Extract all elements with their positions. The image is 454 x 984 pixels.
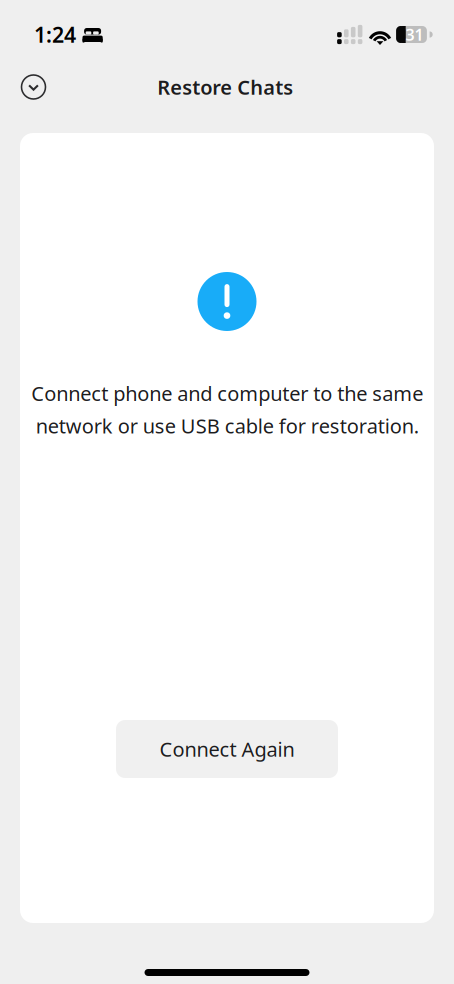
- staticText: Connect Again: [159, 736, 294, 762]
- staticText: Connect phone and computer to the same n…: [31, 380, 423, 439]
- staticText: Restore Chats: [157, 74, 293, 100]
- staticText: 1:24: [34, 20, 76, 49]
- button[interactable]: Connect Again: [116, 720, 338, 778]
- staticText: 31: [405, 24, 423, 45]
- button[interactable]: Dismiss: [11, 67, 55, 107]
